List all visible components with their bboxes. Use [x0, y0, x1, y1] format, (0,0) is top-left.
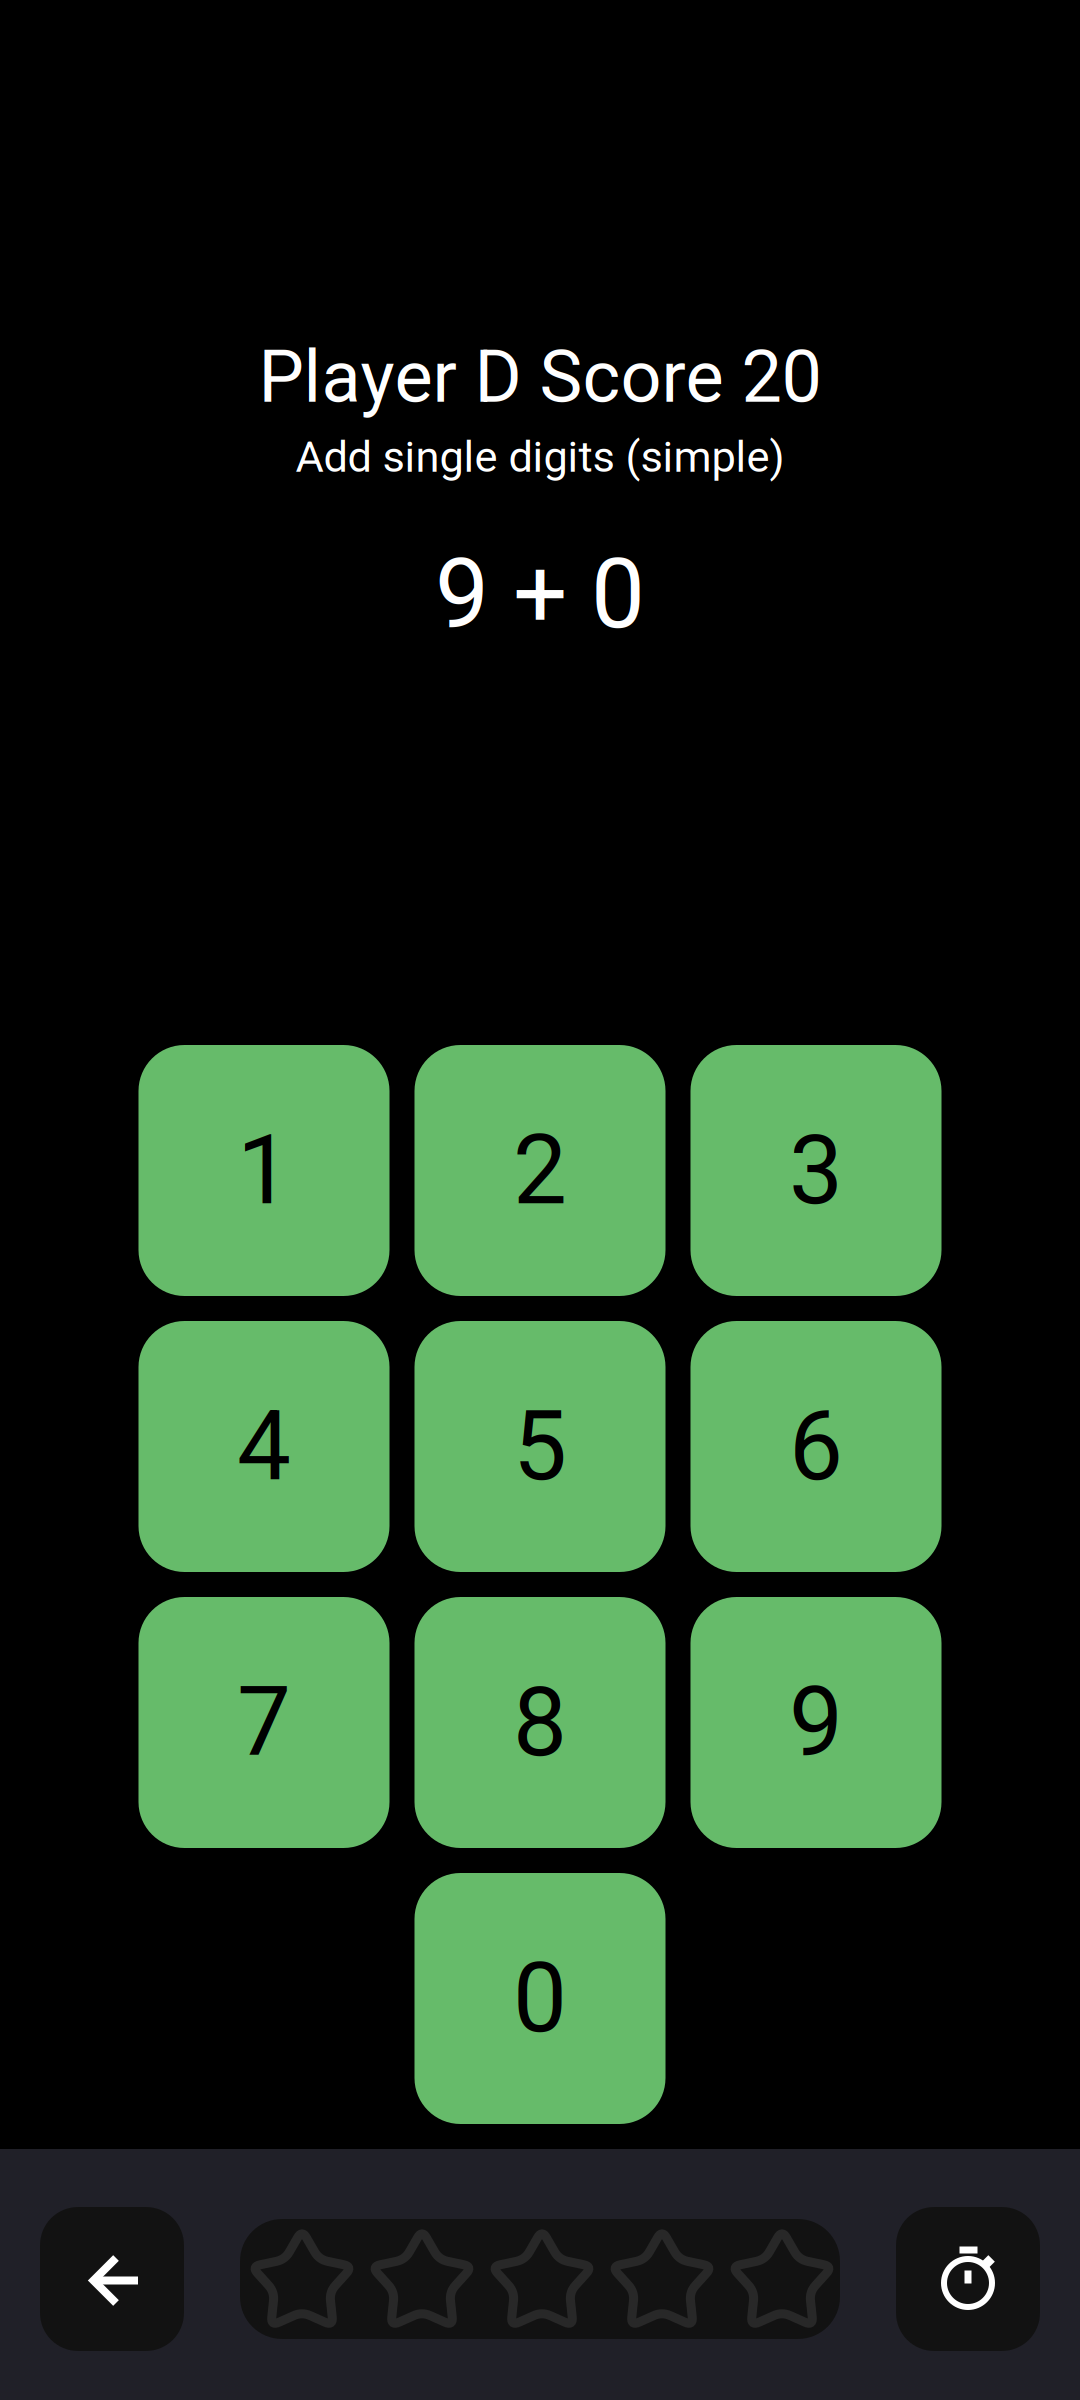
staticText: 4 — [237, 1390, 291, 1503]
button[interactable]: 1 — [138, 1045, 389, 1296]
staticText: Player D Score 20 — [258, 335, 821, 419]
button[interactable]: Timer — [896, 2207, 1040, 2351]
staticText: 6 — [789, 1390, 843, 1503]
button[interactable]: Back — [40, 2207, 184, 2351]
button[interactable]: 0 — [414, 1873, 665, 2124]
staticText: 0 — [513, 1942, 567, 2055]
staticText: 1 — [237, 1114, 291, 1227]
button[interactable]: 9 — [690, 1597, 941, 1848]
staticText: 8 — [513, 1666, 567, 1779]
button[interactable]: 4 — [138, 1321, 389, 1572]
staticText: Add single digits (simple) — [295, 431, 784, 482]
button[interactable]: 3 — [690, 1045, 941, 1296]
staticText: 9 + 0 — [435, 538, 645, 651]
button[interactable]: 2 — [414, 1045, 665, 1296]
staticText: 5 — [513, 1390, 567, 1503]
staticText: 2 — [513, 1114, 567, 1227]
button[interactable]: 7 — [138, 1597, 389, 1848]
staticText: 9 — [789, 1666, 843, 1779]
button[interactable]: 5 — [414, 1321, 665, 1572]
staticText: 7 — [237, 1666, 291, 1779]
button[interactable]: 8 — [414, 1597, 665, 1848]
button[interactable]: 6 — [690, 1321, 941, 1572]
staticText: 3 — [789, 1114, 843, 1227]
